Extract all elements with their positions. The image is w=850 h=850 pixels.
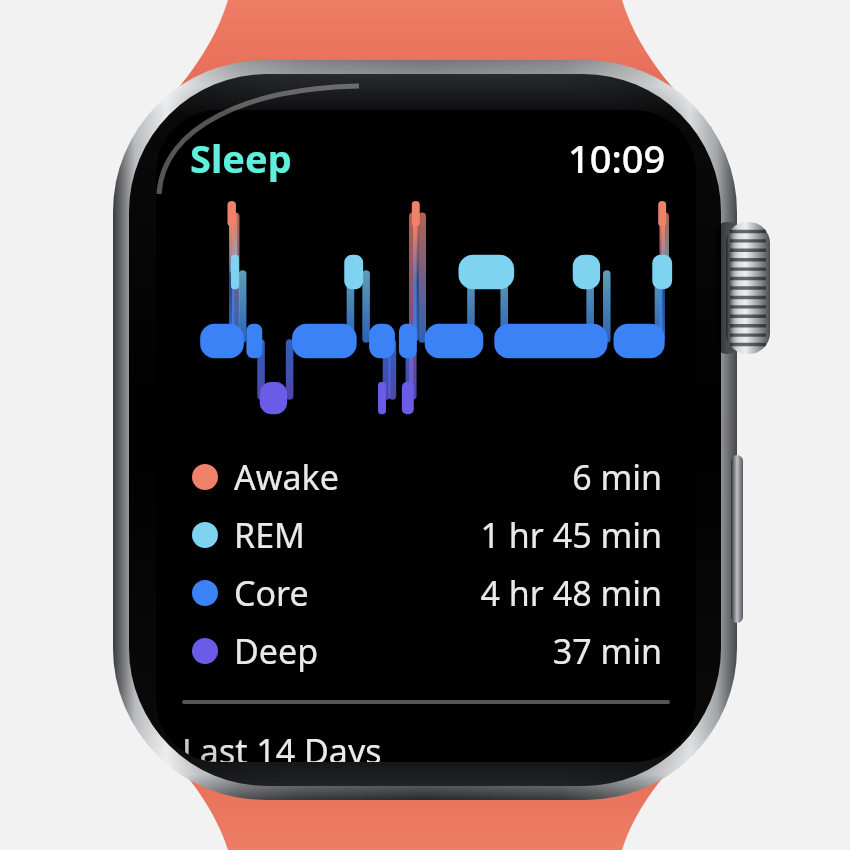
button[interactable]: Deep <box>156 622 696 680</box>
staticText: Awake <box>234 454 339 500</box>
button[interactable]: Awake <box>156 448 696 506</box>
button[interactable]: Sleep stages chart <box>156 194 696 432</box>
staticText: Core <box>234 570 309 616</box>
button[interactable]: Last 14 Days <box>156 728 696 762</box>
staticText: Sleep <box>190 132 292 184</box>
staticText: 1 hr 45 min <box>480 512 662 558</box>
staticText: 37 min <box>552 628 662 674</box>
staticText: 10:09 <box>568 132 666 184</box>
staticText: 6 min <box>572 454 662 500</box>
staticText: REM <box>234 512 305 558</box>
staticText: 4 hr 48 min <box>480 570 662 616</box>
button[interactable]: Core <box>156 564 696 622</box>
staticText: Last 14 Days <box>182 728 382 762</box>
staticText: Deep <box>234 628 319 674</box>
button[interactable]: REM <box>156 506 696 564</box>
